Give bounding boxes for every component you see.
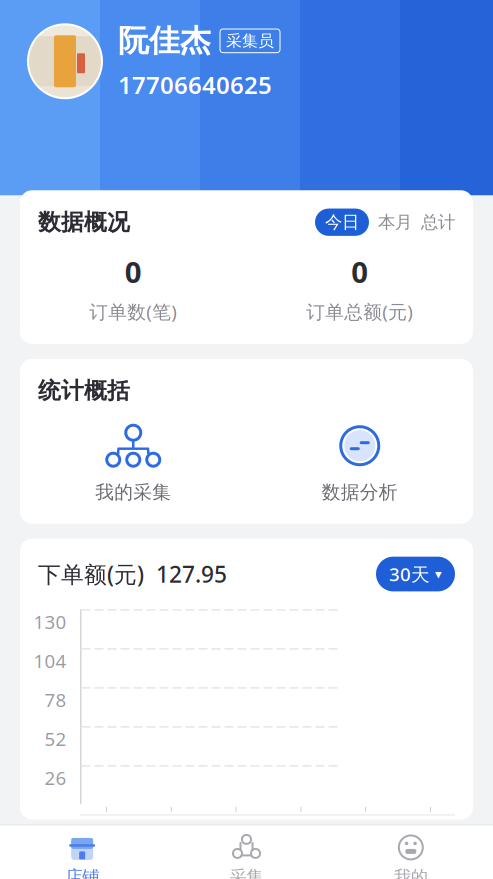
staticText: 104 <box>33 648 66 673</box>
staticText: 采集员 <box>226 31 274 51</box>
staticText: ▾ <box>435 566 442 582</box>
button[interactable]: 店铺 <box>0 832 164 879</box>
staticText: 我的 <box>394 866 428 879</box>
staticText: 下单额(元) 127.95 <box>38 559 227 589</box>
staticText: 订单总额(元) <box>306 299 413 324</box>
staticText: 订单数(笔) <box>89 299 177 324</box>
staticText: 78 <box>44 687 66 712</box>
button[interactable]: 本月 <box>378 212 412 233</box>
staticText: 数据分析 <box>322 481 398 504</box>
staticText: 52 <box>44 726 66 751</box>
staticText: 26 <box>44 765 66 790</box>
staticText: 0 <box>351 252 368 291</box>
staticText: 今日 <box>325 212 359 233</box>
staticText: 30天 <box>389 562 430 586</box>
staticText: 17706640625 <box>118 69 272 101</box>
staticText: 数据概况 <box>38 208 130 236</box>
staticText: 0 <box>125 252 142 291</box>
staticText: 我的采集 <box>95 481 171 504</box>
staticText: 店铺 <box>65 866 99 879</box>
button[interactable]: 数据分析 <box>246 423 473 504</box>
button[interactable]: 今日 <box>315 209 369 236</box>
staticText: 采集 <box>229 866 263 879</box>
staticText: 本月 <box>378 212 412 233</box>
button[interactable]: 采集 <box>164 832 329 879</box>
button[interactable]: 我的 <box>329 832 493 879</box>
button[interactable]: 30天 <box>376 557 455 591</box>
staticText: 统计概括 <box>38 377 130 405</box>
staticText: 130 <box>33 609 66 634</box>
button[interactable]: 总计 <box>421 212 455 233</box>
staticText: 总计 <box>421 212 455 233</box>
staticText: 阮佳杰 <box>118 22 211 60</box>
button[interactable]: 我的采集 <box>20 423 246 504</box>
